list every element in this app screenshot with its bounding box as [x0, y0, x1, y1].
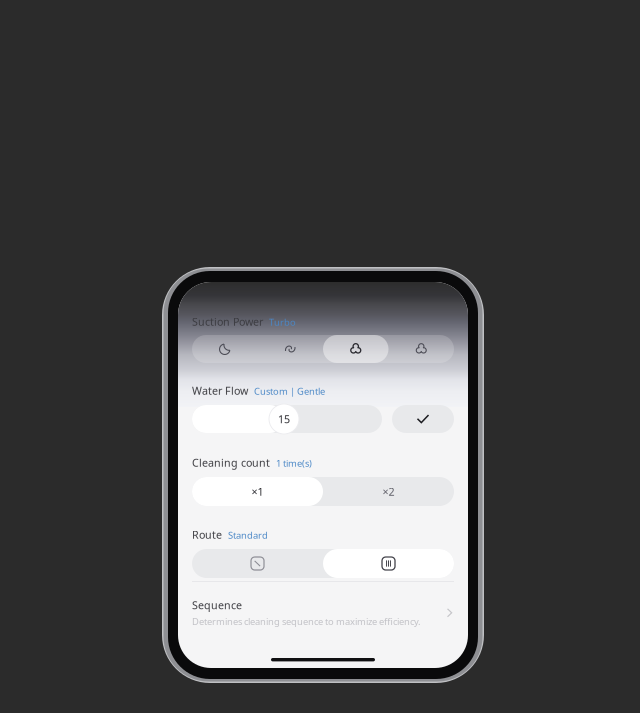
button[interactable]: Turbo suction, selected [323, 335, 388, 363]
button[interactable]: Standard route [323, 549, 454, 578]
staticText: Custom | Gentle [254, 385, 325, 397]
staticText: Turbo [269, 316, 296, 328]
staticText: Sequence [192, 598, 242, 612]
staticText: Determines cleaning sequence to maximize… [192, 615, 421, 628]
button[interactable]: Confirm water flow [392, 405, 454, 433]
staticText: Route [192, 527, 222, 542]
staticText: ×1 [251, 484, 263, 499]
staticText: Water Flow [192, 383, 248, 398]
button[interactable]: Max suction [388, 335, 454, 363]
button[interactable]: Clean twice [323, 477, 454, 506]
button[interactable]: Quiet suction [192, 335, 257, 363]
staticText: 15 [278, 412, 290, 426]
button[interactable]: Sequence [192, 599, 454, 627]
staticText: Suction Power [192, 314, 263, 329]
button[interactable]: Water flow level 15 [192, 405, 382, 433]
staticText: 1 time(s) [276, 457, 312, 469]
staticText: ×2 [382, 484, 394, 499]
button[interactable]: Clean once [192, 477, 323, 506]
button[interactable]: Quick route [192, 549, 323, 578]
button[interactable]: Standard suction [257, 335, 323, 363]
staticText: Cleaning count [192, 455, 270, 470]
staticText: Standard [228, 529, 268, 541]
